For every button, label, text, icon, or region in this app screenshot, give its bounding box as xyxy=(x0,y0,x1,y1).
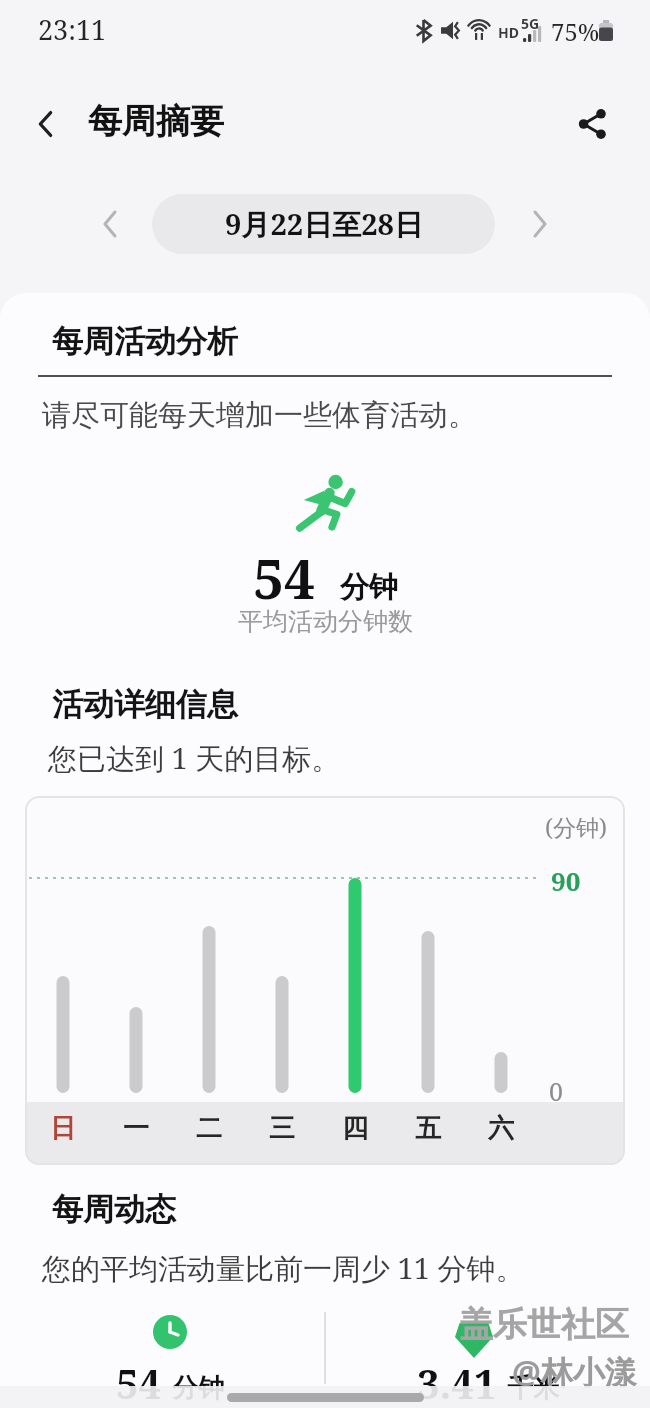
staticText: 3.41 xyxy=(417,1356,497,1408)
staticText: 请尽可能每天增加一些体育活动。 xyxy=(42,397,477,434)
staticText: 平均活动分钟数 xyxy=(238,606,413,637)
staticText: 54 xyxy=(116,1356,162,1408)
button[interactable] xyxy=(568,100,616,148)
staticText: 90 xyxy=(551,863,581,898)
staticText: 您已达到 1 天的目标。 xyxy=(48,738,341,778)
staticText: HD xyxy=(498,23,519,42)
staticText: 分钟 xyxy=(172,1372,224,1405)
staticText: 一 xyxy=(123,1112,149,1145)
staticText: 23:11 xyxy=(38,11,107,48)
staticText: @林小漾 xyxy=(512,1350,637,1394)
staticText: 0 xyxy=(549,1074,563,1108)
staticText: 您的平均活动量比前一周少 11 分钟。 xyxy=(42,1248,525,1288)
button[interactable]: 3.41 xyxy=(378,1356,598,1408)
staticText: 盖乐世社区 xyxy=(459,1303,629,1346)
staticText: 二 xyxy=(196,1112,222,1145)
staticText: 每周摘要 xyxy=(88,100,224,143)
staticText: 六 xyxy=(488,1112,514,1145)
staticText: 三 xyxy=(269,1112,295,1145)
staticText: 四 xyxy=(342,1112,368,1145)
button[interactable] xyxy=(86,200,134,248)
button[interactable] xyxy=(22,100,70,148)
staticText: 分钟 xyxy=(340,569,398,606)
staticText: 5G xyxy=(521,14,540,33)
staticText: 75% xyxy=(551,15,600,48)
staticText: 每周动态 xyxy=(52,1190,176,1229)
staticText: 五 xyxy=(415,1112,441,1145)
staticText: 日 xyxy=(50,1112,76,1145)
staticText: 54 xyxy=(253,540,316,615)
staticText: 每周活动分析 xyxy=(52,322,238,361)
staticText: (分钟) xyxy=(545,811,607,842)
staticText: 活动详细信息 xyxy=(52,685,238,724)
button[interactable]: 54 xyxy=(60,1356,280,1408)
button[interactable] xyxy=(516,200,564,248)
button[interactable]: 9月22日至28日 xyxy=(152,194,495,254)
staticText: 9月22日至28日 xyxy=(225,204,423,244)
staticText: 千米 xyxy=(507,1372,559,1405)
